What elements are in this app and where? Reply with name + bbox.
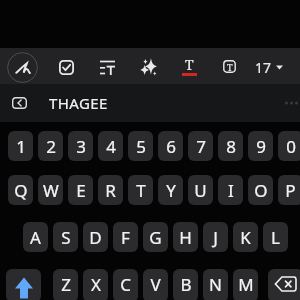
staticText: G	[149, 226, 162, 249]
staticText: T	[136, 179, 146, 202]
button[interactable]: Y	[158, 175, 183, 205]
button[interactable]: W	[38, 175, 63, 205]
button[interactable]: 7	[188, 131, 213, 161]
button[interactable]: Text style	[214, 48, 244, 84]
button[interactable]: 4	[98, 131, 123, 161]
staticText: 5	[136, 135, 146, 158]
button[interactable]: J	[203, 222, 228, 252]
button[interactable]: R	[98, 175, 123, 205]
staticText: X	[91, 273, 101, 296]
button[interactable]: 2	[38, 131, 63, 161]
staticText: 17	[255, 58, 272, 77]
button[interactable]: S	[53, 222, 78, 252]
button[interactable]: 8	[218, 131, 243, 161]
staticText: 1	[16, 135, 26, 158]
button[interactable]: Back	[7, 91, 31, 115]
staticText: 9	[256, 135, 266, 158]
button[interactable]: D	[83, 222, 108, 252]
button[interactable]: T	[128, 175, 153, 205]
staticText: 7	[196, 135, 206, 158]
button[interactable]: 9	[248, 131, 273, 161]
button[interactable]: H	[173, 222, 198, 252]
button[interactable]: E	[68, 175, 93, 205]
staticText: B	[180, 273, 192, 296]
staticText: A	[30, 226, 41, 249]
button[interactable]: I	[218, 175, 243, 205]
button[interactable]: V	[143, 269, 168, 300]
staticText: T	[185, 55, 194, 74]
staticText: P	[285, 179, 296, 202]
staticText: V	[150, 273, 161, 296]
staticText: T	[227, 61, 233, 73]
staticText: Z	[61, 273, 71, 296]
staticText: I	[228, 179, 234, 202]
button[interactable]: More options	[273, 88, 299, 118]
staticText: F	[121, 226, 130, 249]
button[interactable]: A	[23, 222, 48, 252]
button[interactable]: Font size 17	[249, 49, 289, 85]
button[interactable]: 6	[158, 131, 183, 161]
staticText: D	[89, 226, 102, 249]
staticText: R	[105, 179, 116, 202]
button[interactable]: M	[233, 269, 258, 300]
button[interactable]: Q	[8, 175, 33, 205]
staticText: M	[238, 273, 254, 296]
button[interactable]: O	[248, 175, 273, 205]
staticText: 6	[166, 135, 176, 158]
staticText: E	[76, 179, 86, 202]
staticText: Y	[166, 179, 176, 202]
staticText: 4	[106, 135, 116, 158]
button[interactable]: 1	[8, 131, 33, 161]
staticText: 3	[76, 135, 86, 158]
button[interactable]: F	[113, 222, 138, 252]
button[interactable]: AI assist	[134, 49, 164, 85]
button[interactable]: G	[143, 222, 168, 252]
staticText: C	[120, 273, 131, 296]
button[interactable]: L	[263, 222, 288, 252]
button[interactable]: Z	[53, 269, 78, 300]
button[interactable]: Backspace	[268, 269, 300, 300]
button[interactable]: 3	[68, 131, 93, 161]
staticText: 8	[226, 135, 236, 158]
button[interactable]: Format	[92, 49, 122, 85]
button[interactable]: Text color	[174, 49, 204, 85]
button[interactable]: Shift	[6, 269, 41, 300]
staticText: Q	[14, 179, 28, 202]
button[interactable]: X	[83, 269, 108, 300]
button[interactable]: C	[113, 269, 138, 300]
button[interactable]: B	[173, 269, 198, 300]
button[interactable]: Draw	[6, 49, 38, 85]
button[interactable]: P	[278, 175, 300, 205]
staticText: W	[43, 179, 59, 202]
staticText: THAGEE	[49, 93, 108, 113]
button[interactable]: Checklist	[51, 49, 81, 85]
button[interactable]: 0	[278, 131, 300, 161]
button[interactable]: K	[233, 222, 258, 252]
staticText: N	[209, 273, 222, 296]
staticText: S	[61, 226, 71, 249]
staticText: 0	[286, 135, 296, 158]
staticText: U	[194, 179, 207, 202]
staticText: K	[240, 226, 251, 249]
button[interactable]: U	[188, 175, 213, 205]
staticText: H	[179, 226, 192, 249]
staticText: L	[271, 226, 280, 249]
staticText: J	[213, 226, 218, 249]
staticText: O	[254, 179, 268, 202]
button[interactable]: 5	[128, 131, 153, 161]
staticText: 2	[46, 135, 56, 158]
button[interactable]: N	[203, 269, 228, 300]
